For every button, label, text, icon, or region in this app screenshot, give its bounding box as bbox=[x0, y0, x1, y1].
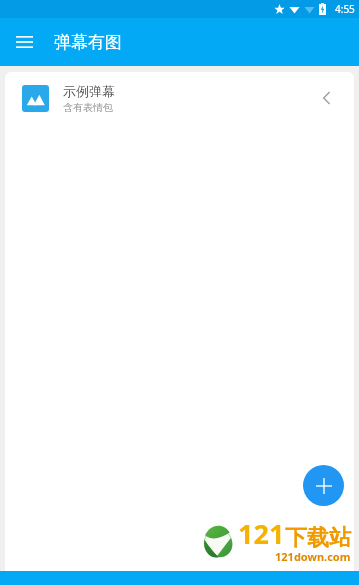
button[interactable]: Add bbox=[303, 465, 344, 506]
staticText: 示例弹幕 bbox=[63, 83, 115, 99]
staticText: 121down.com bbox=[275, 549, 351, 564]
staticText: 弹幕有图 bbox=[54, 32, 122, 53]
staticText: 121 bbox=[238, 515, 285, 552]
button[interactable]: Open navigation menu bbox=[6, 24, 42, 60]
staticText: 下载站 bbox=[285, 524, 351, 552]
staticText: 含有表情包 bbox=[63, 101, 113, 114]
button[interactable]: 示例弹幕 bbox=[5, 72, 354, 124]
button[interactable]: More bbox=[314, 86, 338, 110]
staticText: 4:55 bbox=[335, 2, 355, 16]
